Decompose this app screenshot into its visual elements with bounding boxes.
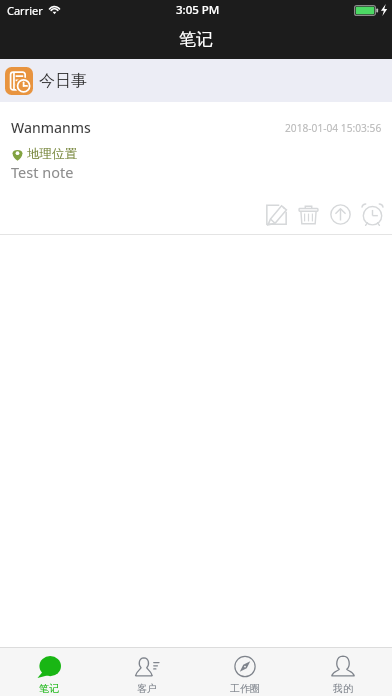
- staticText: Test note: [11, 162, 74, 182]
- staticText: 笔记: [179, 29, 213, 50]
- staticText: 工作圈: [230, 682, 260, 695]
- button[interactable]: 我的: [294, 648, 392, 696]
- button[interactable]: Upload: [324, 198, 356, 230]
- staticText: 我的: [333, 682, 353, 695]
- staticText: Wanmanms: [11, 118, 91, 137]
- button[interactable]: Edit: [260, 198, 292, 230]
- staticText: 地理位置: [27, 146, 77, 162]
- button[interactable]: Set reminder: [356, 198, 388, 230]
- staticText: 3:05 PM: [176, 2, 220, 18]
- button[interactable]: Delete: [292, 198, 324, 230]
- button[interactable]: 今日事: [0, 59, 392, 102]
- button[interactable]: 工作圈: [196, 648, 294, 696]
- staticText: 笔记: [39, 682, 59, 695]
- staticText: Carrier: [7, 3, 43, 18]
- staticText: 今日事: [39, 71, 87, 91]
- button[interactable]: 客户: [98, 648, 196, 696]
- staticText: 客户: [137, 682, 157, 695]
- button[interactable]: Wanmanms: [0, 102, 392, 234]
- button[interactable]: 笔记: [0, 648, 98, 696]
- staticText: 2018-01-04 15:03:56: [285, 121, 382, 135]
